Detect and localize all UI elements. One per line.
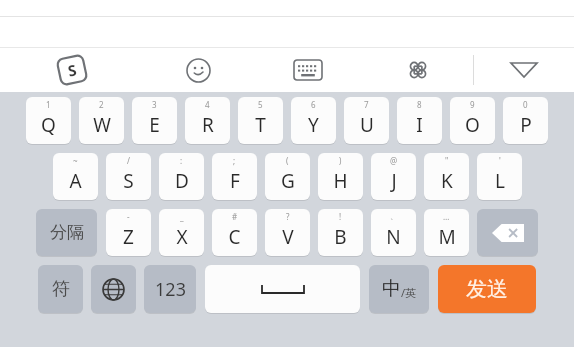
button[interactable]: ? — [265, 209, 310, 256]
staticText: Y — [308, 112, 319, 138]
staticText: N — [386, 224, 401, 250]
staticText: T — [255, 112, 266, 138]
button[interactable]: Chinese English toggle — [369, 265, 429, 313]
button[interactable]: 1 — [26, 97, 71, 144]
button[interactable]: 4 — [185, 97, 230, 144]
staticText: ) — [339, 155, 342, 166]
staticText: : — [180, 155, 183, 166]
staticText: M — [438, 224, 456, 250]
staticText: … — [443, 211, 450, 222]
button[interactable]: ; — [212, 153, 257, 200]
staticText: ( — [286, 155, 289, 166]
button[interactable]: 分隔 — [36, 209, 97, 256]
staticText: D — [175, 168, 189, 194]
staticText: 8 — [417, 99, 422, 110]
staticText: S — [66, 59, 79, 81]
button[interactable]: Emoji — [143, 48, 253, 92]
button[interactable]: _ — [159, 209, 204, 256]
button[interactable]: Space — [205, 265, 360, 313]
button[interactable]: 6 — [291, 97, 336, 144]
button[interactable]: ( — [265, 153, 310, 200]
staticText: 0 — [523, 99, 528, 110]
staticText: _ — [180, 211, 184, 222]
staticText: Q — [41, 112, 56, 138]
button[interactable]: 8 — [397, 97, 442, 144]
button[interactable]: 符 — [38, 265, 83, 313]
staticText: 7 — [364, 99, 369, 110]
staticText: H — [333, 168, 348, 194]
staticText: B — [334, 224, 347, 250]
staticText: " — [445, 155, 449, 166]
staticText: W — [93, 112, 111, 138]
staticText: /英 — [401, 285, 417, 300]
button[interactable]: 9 — [450, 97, 495, 144]
staticText: ; — [233, 155, 236, 166]
button[interactable]: Switch language — [91, 265, 136, 313]
button[interactable]: @ — [371, 153, 416, 200]
staticText: L — [495, 168, 505, 194]
staticText: 123 — [155, 277, 186, 302]
staticText: 发送 — [466, 276, 508, 302]
staticText: G — [281, 168, 295, 194]
staticText: I — [416, 112, 423, 138]
staticText: S — [123, 168, 134, 194]
staticText: Z — [123, 224, 134, 250]
staticText: - — [127, 211, 130, 222]
staticText: 9 — [470, 99, 475, 110]
button[interactable]: Hide keyboard — [474, 48, 574, 92]
button[interactable]: / — [106, 153, 151, 200]
staticText: E — [149, 112, 160, 138]
staticText: 、 — [390, 211, 398, 221]
staticText: F — [230, 168, 240, 194]
staticText: ! — [339, 211, 342, 222]
button[interactable]: 123 — [144, 265, 196, 313]
button[interactable]: " — [424, 153, 469, 200]
button[interactable]: Keyboard layout — [253, 48, 363, 92]
button[interactable]: 发送 — [438, 265, 536, 313]
staticText: 5 — [258, 99, 263, 110]
button[interactable]: Sogou input — [0, 48, 143, 92]
staticText: C — [228, 224, 241, 250]
staticText: K — [441, 168, 453, 194]
button[interactable]: Backspace — [477, 209, 538, 256]
staticText: U — [360, 112, 374, 138]
staticText: 中 — [382, 277, 401, 301]
staticText: X — [176, 224, 188, 250]
staticText: 6 — [311, 99, 316, 110]
staticText: 4 — [205, 99, 210, 110]
staticText: 符 — [52, 278, 70, 301]
button[interactable]: ) — [318, 153, 363, 200]
button[interactable]: 3 — [132, 97, 177, 144]
staticText: ~ — [73, 155, 78, 166]
button[interactable]: More functions — [363, 48, 473, 92]
staticText: / — [127, 155, 130, 166]
staticText: O — [465, 112, 480, 138]
staticText: @ — [390, 155, 398, 166]
staticText: J — [391, 168, 397, 194]
button[interactable]: : — [159, 153, 204, 200]
button[interactable]: - — [106, 209, 151, 256]
button[interactable]: ! — [318, 209, 363, 256]
button[interactable]: … — [424, 209, 469, 256]
staticText: 3 — [152, 99, 157, 110]
button[interactable]: 7 — [344, 97, 389, 144]
button[interactable]: ~ — [53, 153, 98, 200]
staticText: ? — [286, 211, 290, 222]
button[interactable]: 5 — [238, 97, 283, 144]
button[interactable]: 2 — [79, 97, 124, 144]
staticText: 2 — [99, 99, 104, 110]
button[interactable]: 、 — [371, 209, 416, 256]
button[interactable]: # — [212, 209, 257, 256]
staticText: ' — [499, 155, 501, 166]
staticText: A — [69, 168, 82, 194]
staticText: V — [282, 224, 294, 250]
staticText: P — [520, 112, 532, 138]
staticText: 1 — [46, 99, 51, 110]
staticText: 分隔 — [50, 222, 84, 243]
staticText: R — [202, 112, 214, 138]
staticText: # — [232, 211, 238, 222]
button[interactable]: 0 — [503, 97, 548, 144]
button[interactable]: ' — [477, 153, 522, 200]
